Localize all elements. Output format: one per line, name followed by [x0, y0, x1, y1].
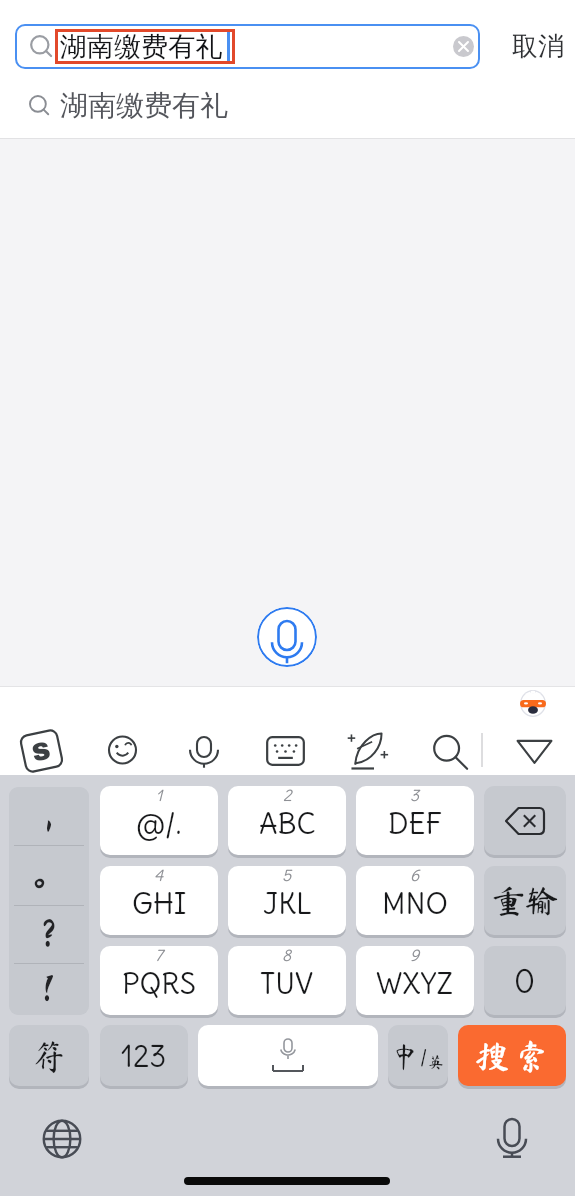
- staticText: 1: [156, 786, 163, 805]
- staticText: S: [29, 736, 54, 767]
- staticText: 重输: [492, 884, 558, 917]
- staticText: 0: [514, 961, 536, 1001]
- button[interactable]: 重输: [484, 866, 566, 935]
- button[interactable]: 0: [484, 946, 566, 1015]
- button[interactable]: 湖南缴费有礼: [0, 84, 575, 126]
- staticText: 6: [410, 866, 420, 885]
- staticText: GHI: [132, 885, 187, 921]
- staticText: 123: [121, 1037, 167, 1075]
- button[interactable]: 8: [228, 946, 346, 1015]
- button[interactable]: [484, 786, 566, 855]
- staticText: 湖南缴费有礼: [60, 30, 222, 64]
- staticText: 4: [154, 866, 164, 885]
- button[interactable]: 7: [100, 946, 218, 1015]
- button[interactable]: [99, 728, 146, 774]
- staticText: 7: [155, 946, 163, 965]
- button[interactable]: [36, 1113, 88, 1165]
- button[interactable]: ？: [9, 905, 89, 963]
- staticText: WXYZ: [376, 965, 454, 1001]
- button[interactable]: [343, 728, 390, 774]
- button[interactable]: ，: [9, 787, 89, 845]
- staticText: 英: [428, 1054, 445, 1070]
- button[interactable]: 1: [100, 786, 218, 855]
- staticText: TUV: [260, 965, 314, 1001]
- staticText: /: [420, 1044, 428, 1069]
- button[interactable]: ，: [9, 787, 89, 1015]
- button[interactable]: [453, 36, 474, 57]
- button[interactable]: 中: [388, 1025, 448, 1086]
- button[interactable]: ！: [9, 963, 89, 1015]
- button[interactable]: [180, 728, 227, 774]
- staticText: JKL: [263, 885, 312, 921]
- button[interactable]: 9: [356, 946, 474, 1015]
- staticText: ！: [30, 970, 69, 1008]
- button[interactable]: [486, 1112, 538, 1164]
- button[interactable]: [511, 728, 558, 774]
- button[interactable]: [425, 728, 472, 774]
- button[interactable]: [198, 1025, 378, 1086]
- button[interactable]: [257, 607, 317, 667]
- staticText: 搜索: [475, 1039, 555, 1073]
- staticText: ABC: [259, 805, 316, 841]
- button[interactable]: S: [18, 728, 65, 774]
- button[interactable]: [262, 728, 309, 774]
- staticText: ，: [30, 797, 69, 835]
- staticText: 符: [32, 1039, 66, 1073]
- button[interactable]: 5: [228, 866, 346, 935]
- button[interactable]: 。: [9, 845, 89, 905]
- staticText: 取消: [512, 30, 564, 63]
- button[interactable]: 取消: [500, 24, 575, 69]
- staticText: 。: [30, 856, 69, 894]
- button[interactable]: 123: [100, 1025, 188, 1086]
- button[interactable]: 搜索: [458, 1025, 566, 1086]
- button[interactable]: 4: [100, 866, 218, 935]
- staticText: MNO: [382, 885, 449, 921]
- button[interactable]: 符: [9, 1025, 89, 1086]
- staticText: 9: [410, 946, 420, 965]
- staticText: 8: [282, 946, 292, 965]
- button[interactable]: 2: [228, 786, 346, 855]
- staticText: 中: [391, 1042, 420, 1070]
- staticText: 5: [282, 866, 292, 885]
- staticText: ？: [30, 915, 69, 953]
- button[interactable]: [15, 24, 480, 69]
- staticText: 3: [410, 786, 420, 805]
- button[interactable]: 6: [356, 866, 474, 935]
- staticText: DEF: [388, 805, 442, 841]
- staticText: 湖南缴费有礼: [60, 88, 228, 123]
- button[interactable]: 3: [356, 786, 474, 855]
- staticText: PQRS: [122, 965, 196, 1001]
- staticText: 2: [283, 786, 292, 805]
- staticText: @/.: [136, 805, 182, 841]
